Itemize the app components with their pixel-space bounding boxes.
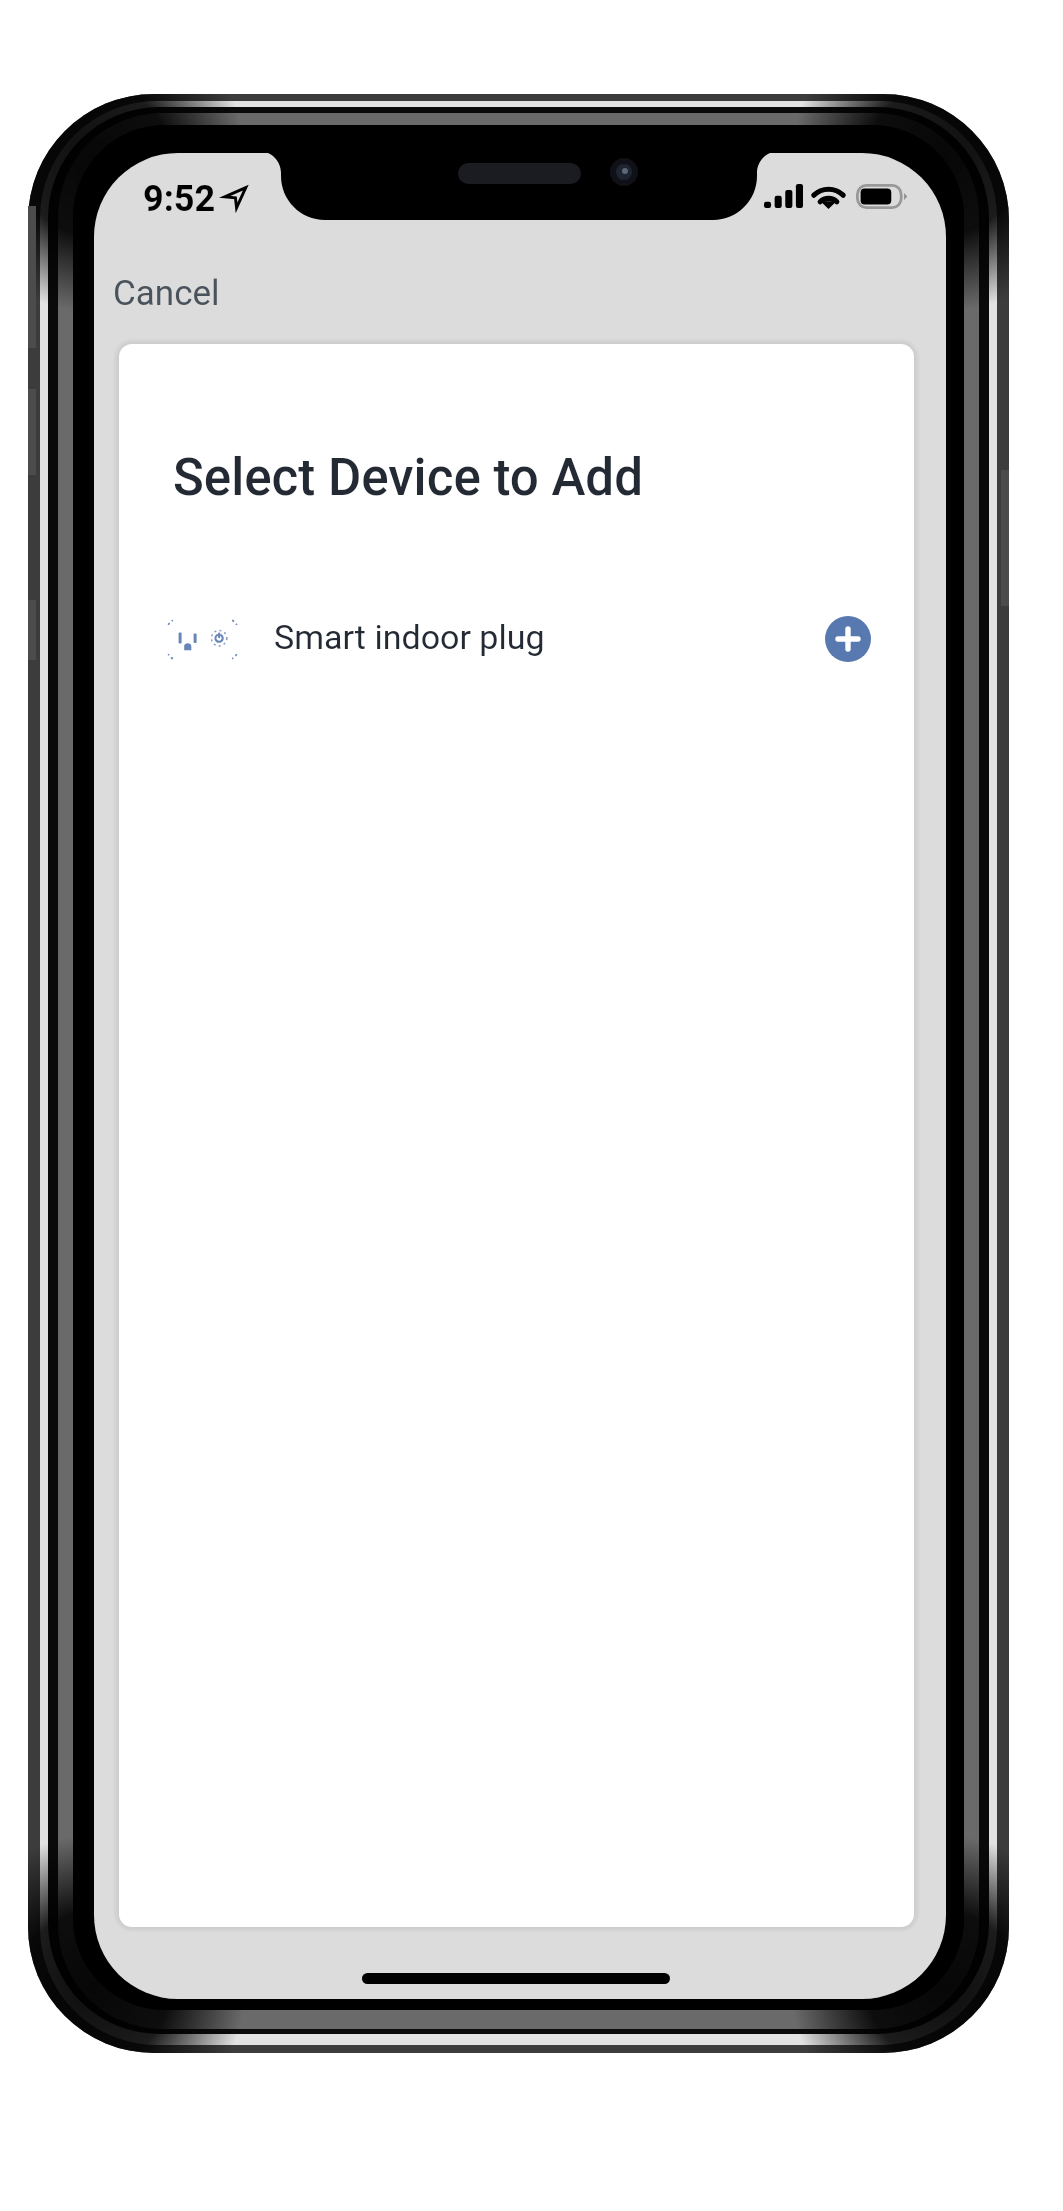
staticText: Smart indoor plug [274, 617, 545, 657]
button[interactable]: Cancel [100, 264, 233, 323]
staticText: Cancel [113, 273, 220, 314]
button[interactable]: Add Smart indoor plug [825, 616, 871, 662]
button[interactable]: Smart indoor plug [119, 594, 914, 680]
staticText: 9:52 [143, 178, 216, 220]
staticText: Select Device to Add [173, 448, 643, 508]
